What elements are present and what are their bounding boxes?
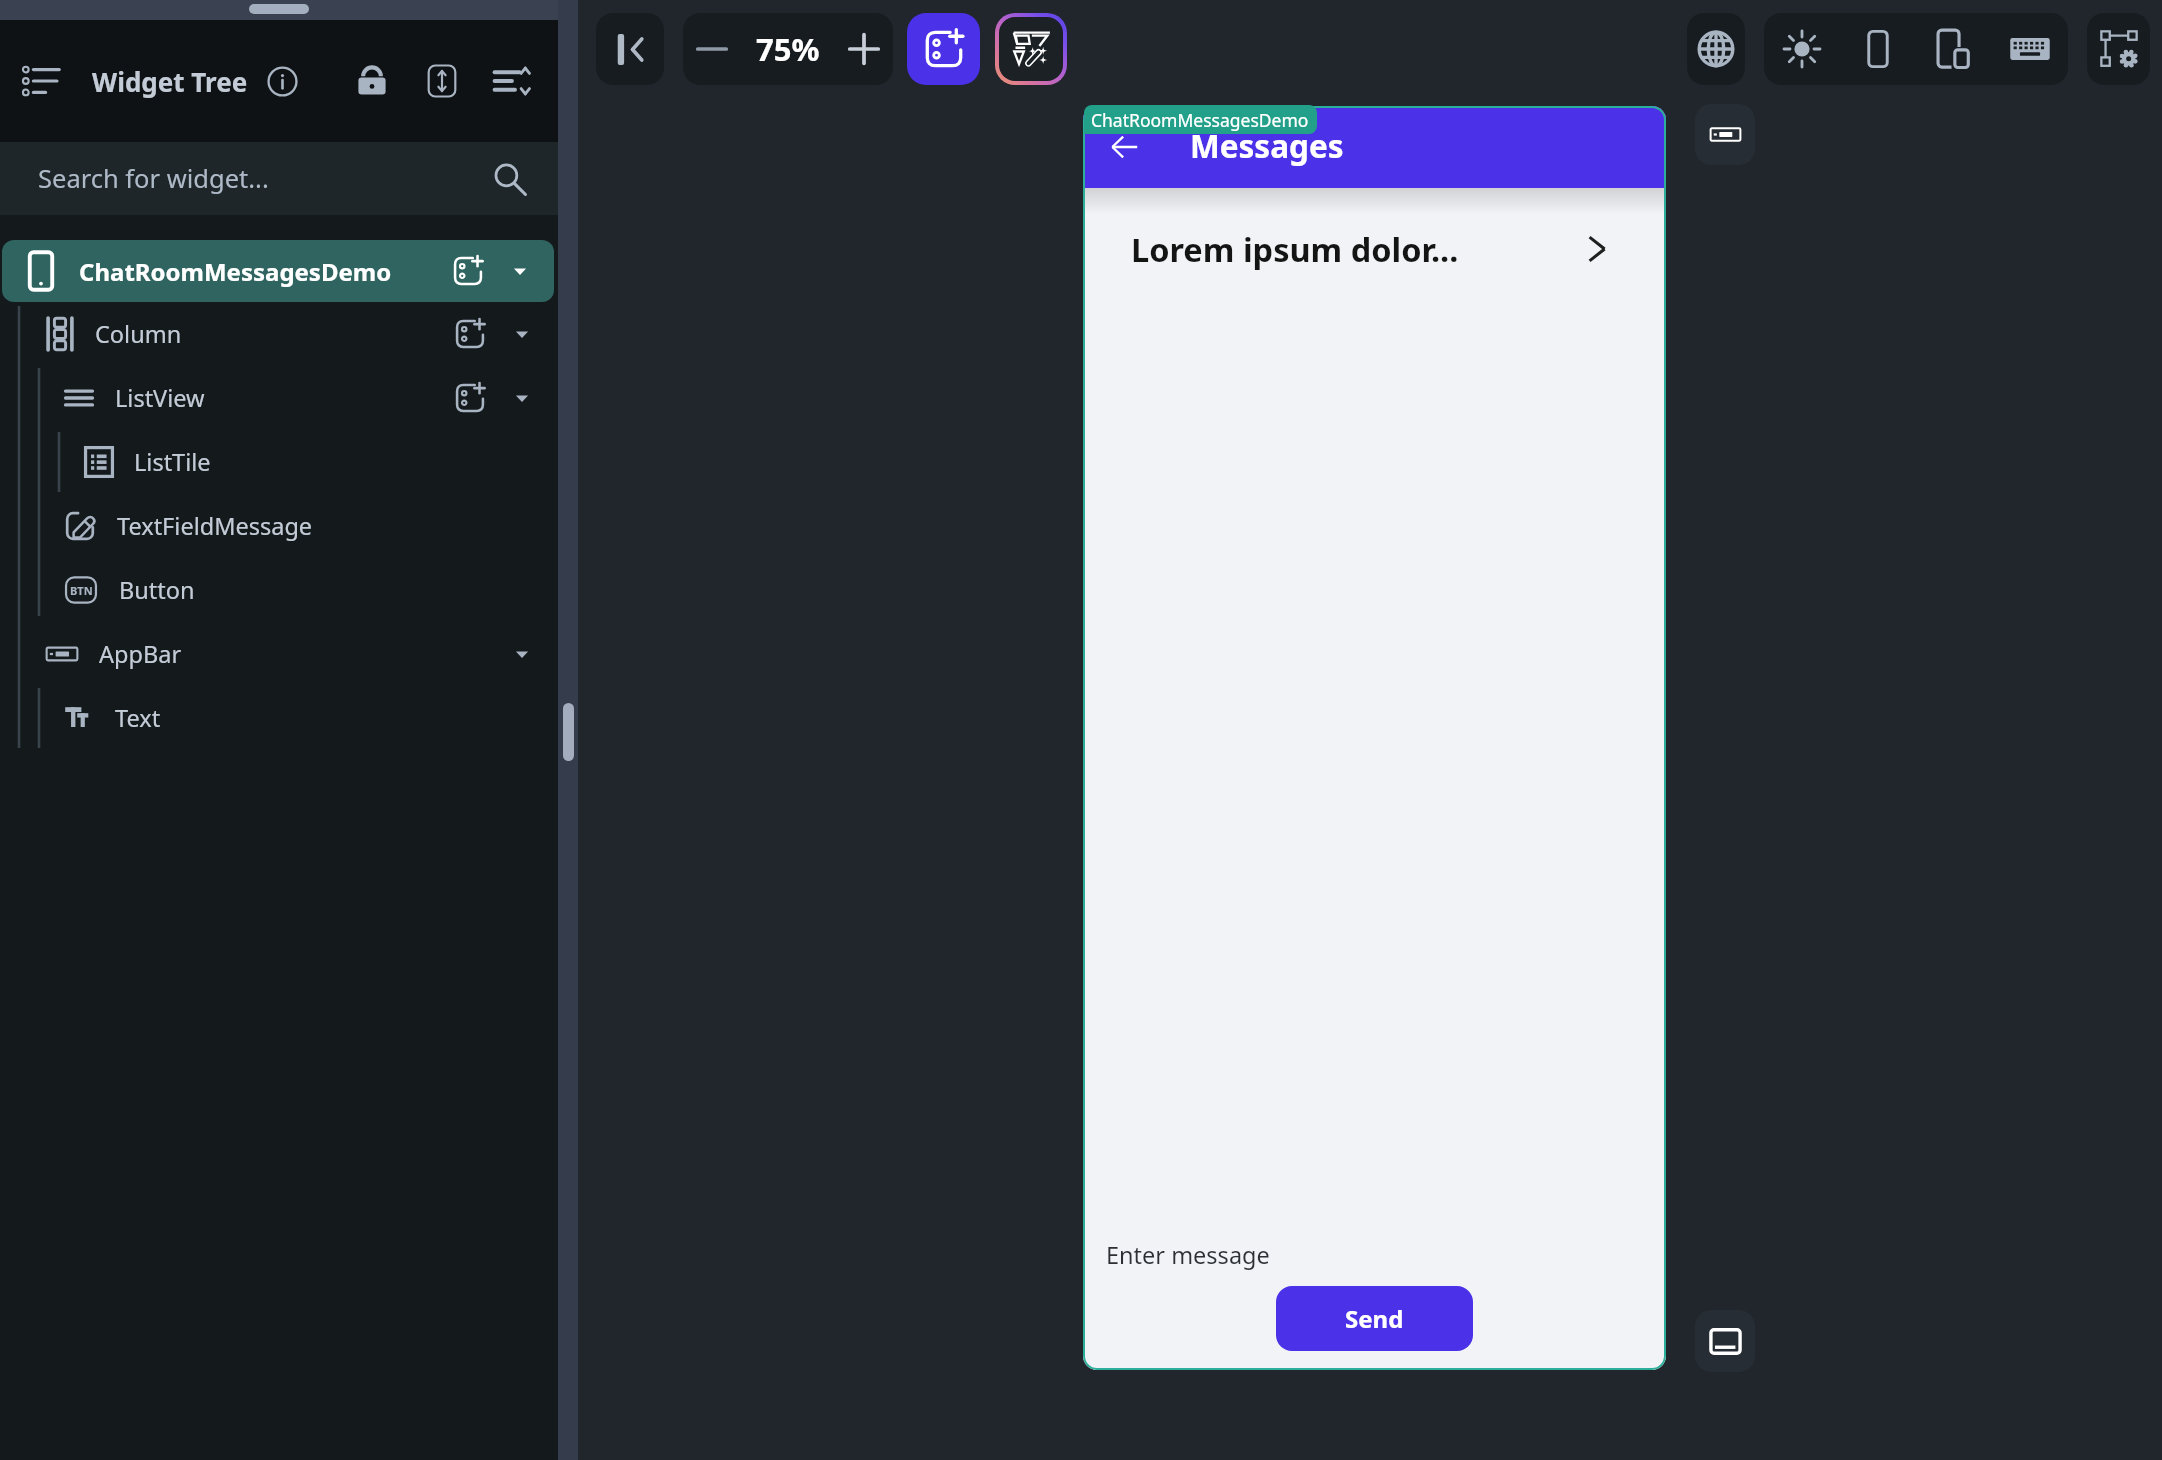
button[interactable]: Widget tree xyxy=(18,58,64,104)
staticText: Button xyxy=(119,574,195,606)
staticText: ListView xyxy=(115,382,205,414)
staticText: Lorem ipsum dolor... xyxy=(1131,227,1459,271)
button[interactable]: Resize xyxy=(418,57,466,105)
button[interactable]: Collapse panel xyxy=(596,13,664,85)
button[interactable]: Send xyxy=(1276,1286,1473,1351)
button[interactable]: ListView xyxy=(0,366,558,430)
button[interactable]: Sort xyxy=(488,57,536,105)
button[interactable]: BTN xyxy=(0,558,558,622)
button[interactable]: Back xyxy=(1083,128,1165,166)
button[interactable]: ListTile xyxy=(0,430,558,494)
staticText: Widget Tree xyxy=(92,64,248,99)
button[interactable]: Lock xyxy=(348,57,396,105)
staticText: Text xyxy=(115,702,161,734)
button[interactable]: Text xyxy=(0,686,558,750)
button[interactable]: Layout settings xyxy=(2087,13,2150,85)
button[interactable]: TextFieldMessage xyxy=(0,494,558,558)
staticText: TextFieldMessage xyxy=(117,510,313,542)
staticText: Enter message xyxy=(1106,1239,1270,1271)
button[interactable]: Responsive preview xyxy=(1916,13,1992,85)
staticText: AppBar xyxy=(99,638,182,670)
staticText: Search for widget... xyxy=(38,161,269,196)
button[interactable]: AppBar xyxy=(0,622,558,686)
button[interactable]: App bar xyxy=(1695,104,1755,165)
staticText: 75% xyxy=(756,28,820,70)
staticText: Column xyxy=(95,318,182,350)
staticText: ChatRoomMessagesDemo xyxy=(79,255,392,288)
button[interactable]: Lorem ipsum dolor... xyxy=(1083,188,1666,310)
button[interactable]: Zoom in xyxy=(835,13,893,85)
button[interactable]: Add widget xyxy=(907,13,980,85)
button[interactable]: Info xyxy=(260,59,304,103)
button[interactable]: Column xyxy=(0,302,558,366)
button[interactable]: Keyboard xyxy=(1992,13,2068,85)
button[interactable]: Device xyxy=(1840,13,1916,85)
button[interactable]: Theme mode xyxy=(1764,13,1840,85)
button[interactable]: Zoom out xyxy=(683,13,741,85)
button[interactable]: AI generate xyxy=(999,17,1063,81)
button[interactable]: Localization xyxy=(1687,13,1745,85)
button[interactable]: Search for widget... xyxy=(0,142,558,215)
button[interactable]: Bottom bar xyxy=(1695,1310,1755,1372)
staticText: BTN xyxy=(70,583,93,598)
staticText: ListTile xyxy=(134,446,211,478)
staticText: Messages xyxy=(1190,124,1344,167)
staticText: ChatRoomMessagesDemo xyxy=(1091,108,1309,132)
button[interactable]: ChatRoomMessagesDemo xyxy=(2,240,554,302)
staticText: Send xyxy=(1345,1302,1404,1335)
